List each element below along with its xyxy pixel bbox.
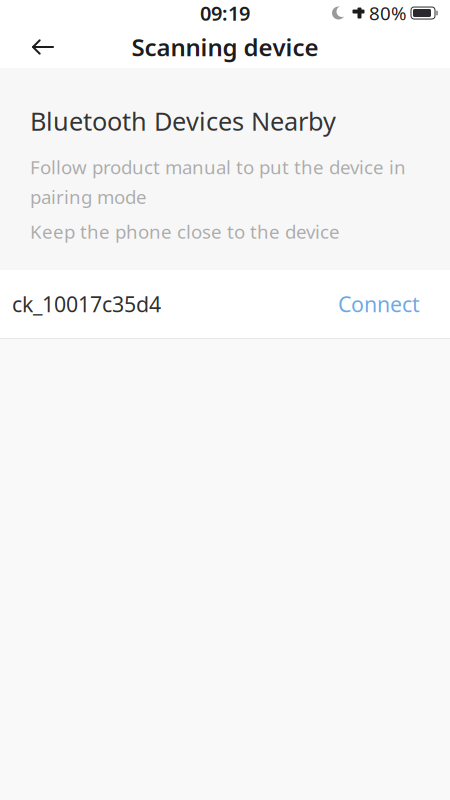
button[interactable]: Search devices: [230, 270, 420, 304]
staticText: Follow product manual to put the device …: [30, 155, 406, 209]
staticText: 80%: [369, 1, 407, 25]
staticText: Bluetooth Devices Nearby: [30, 104, 336, 138]
staticText: Device List: [30, 273, 138, 301]
button[interactable]: ck_10017c35d4: [0, 270, 450, 338]
staticText: ck_10017c35d4: [12, 290, 161, 318]
staticText: Search devices: [246, 273, 393, 301]
staticText: Keep the phone close to the device: [30, 219, 340, 244]
staticText: 09:19: [200, 0, 250, 26]
staticText: Connect: [338, 290, 420, 318]
staticText: Scanning device: [131, 31, 318, 63]
button[interactable]: Back: [20, 26, 66, 68]
